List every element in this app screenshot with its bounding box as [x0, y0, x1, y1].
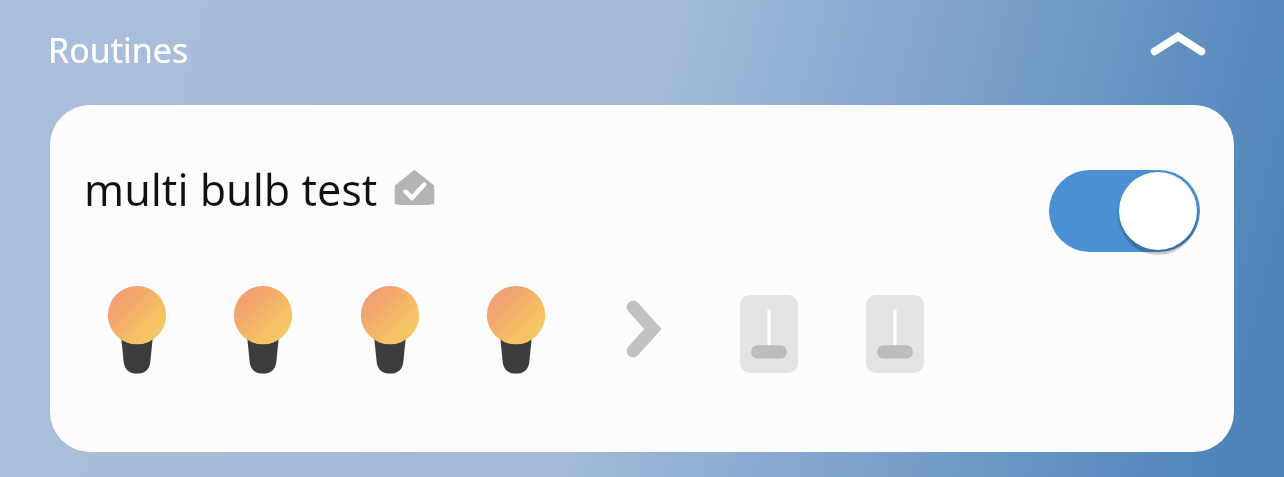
- button[interactable]: Light switch: [740, 295, 798, 373]
- button[interactable]: Collapse Routines: [1139, 8, 1217, 80]
- button[interactable]: Routine enabled toggle: [1049, 170, 1200, 252]
- staticText: Routines: [48, 27, 189, 73]
- button[interactable]: Then: [613, 291, 673, 367]
- button[interactable]: Light bulb: [227, 283, 299, 375]
- button[interactable]: multi bulb test: [50, 105, 1234, 452]
- button[interactable]: Light bulb: [101, 283, 173, 375]
- button[interactable]: Light bulb: [480, 283, 552, 375]
- button[interactable]: Light switch: [866, 295, 924, 373]
- button[interactable]: Light bulb: [354, 283, 426, 375]
- staticText: multi bulb test: [84, 160, 378, 219]
